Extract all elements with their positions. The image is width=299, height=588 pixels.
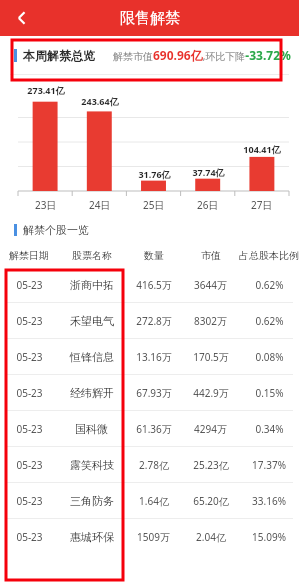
staticText: 24日 [89,198,111,212]
staticText: 67.93万 [136,386,172,400]
staticText: 8302万 [194,314,227,328]
staticText: 经纬辉开 [70,386,114,400]
staticText: 272.8万 [136,314,172,328]
staticText: 31.76亿 [138,168,171,180]
button[interactable]: 05-23 [0,339,299,374]
staticText: 4294万 [194,422,227,436]
staticText: 15.09% [252,530,286,544]
button[interactable]: 05-23 [0,483,299,518]
staticText: 05-23 [16,422,43,436]
staticText: 惠城环保 [70,530,114,544]
staticText: 23日 [35,198,57,212]
staticText: 股票名称 [72,249,112,262]
staticText: 0.62% [255,278,284,292]
staticText: 13.16万 [136,350,172,364]
staticText: 0.08% [255,350,284,364]
button[interactable]: 05-23 [0,303,299,338]
staticText: 3644万 [194,278,227,292]
staticText: 33.16% [252,494,286,508]
staticText: 禾望电气 [70,314,114,328]
staticText: 61.36万 [136,422,172,436]
staticText: 26日 [197,198,219,212]
staticText: 273.41亿 [27,84,65,96]
staticText: 25日 [143,198,165,212]
staticText: 国科微 [75,422,108,436]
staticText: 限售解禁 [120,9,180,28]
staticText: 2.04亿 [196,530,226,544]
staticText: 37.74亿 [192,166,225,178]
button[interactable]: 05-23 [0,519,299,554]
staticText: 2.78亿 [139,458,169,472]
staticText: 243.64亿 [81,95,119,107]
button[interactable]: 本周解禁总览 [0,36,299,74]
staticText: 25.23亿 [193,458,229,472]
staticText: 27日 [251,198,273,212]
staticText: 露笑科技 [70,458,114,472]
staticText: 05-23 [16,458,43,472]
staticText: 05-23 [16,278,43,292]
button[interactable]: 05-23 [0,267,299,302]
button[interactable]: 05-23 [0,411,299,446]
staticText: 市值 [201,249,221,262]
staticText: 1.64亿 [139,494,169,508]
staticText: 解禁日期 [9,249,49,262]
staticText: 0.62% [255,314,284,328]
staticText: 05-23 [16,494,43,508]
staticText: 17.37% [252,458,286,472]
button[interactable]: 05-23 [0,375,299,410]
staticText: 1509万 [137,530,170,544]
staticText: 104.41亿 [243,143,281,155]
staticText: 05-23 [16,530,43,544]
staticText: 170.5万 [193,350,229,364]
staticText: 三角防务 [70,494,114,508]
button[interactable]: 05-23 [0,447,299,482]
staticText: 占总股本比例 [239,249,299,262]
staticText: 442.9万 [193,386,229,400]
staticText: 05-23 [16,350,43,364]
staticText: 解禁市值690.96亿,环比下降-33.72% [113,47,291,63]
staticText: 恒锋信息 [70,350,114,364]
staticText: 0.34% [255,422,284,436]
staticText: 解禁个股一览 [23,223,89,237]
staticText: 65.20亿 [193,494,229,508]
staticText: 05-23 [16,386,43,400]
staticText: 本周解禁总览 [23,48,95,63]
staticText: 数量 [144,249,164,262]
staticText: 0.15% [255,386,284,400]
staticText: 416.5万 [136,278,172,292]
staticText: 05-23 [16,314,43,328]
button[interactable]: Back [8,4,36,32]
staticText: 浙商中拓 [70,278,114,292]
